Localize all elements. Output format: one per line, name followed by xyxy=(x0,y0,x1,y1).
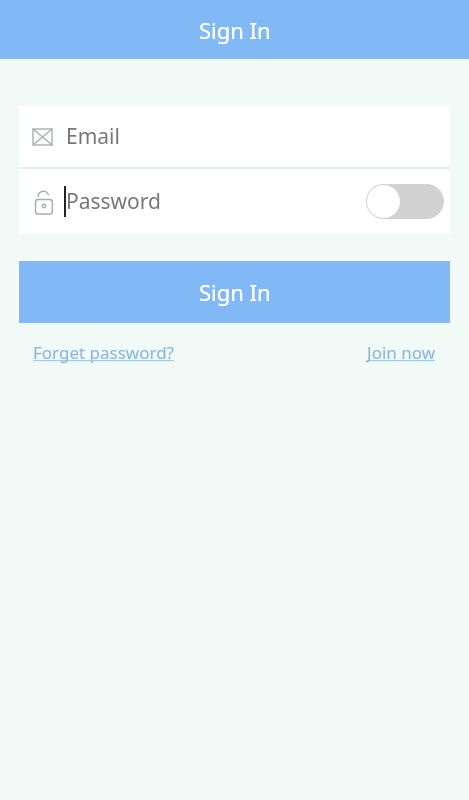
other: Password xyxy=(33,189,54,214)
staticText: Sign In xyxy=(199,15,271,45)
staticText: Email xyxy=(66,122,120,151)
button[interactable]: Email xyxy=(19,106,450,167)
other: Email xyxy=(33,129,52,145)
button[interactable]: Forget password? xyxy=(33,341,174,364)
staticText: Sign In xyxy=(199,277,271,307)
staticText: Join now xyxy=(367,341,436,364)
staticText: Password xyxy=(66,187,161,216)
button[interactable]: Sign In xyxy=(19,261,450,323)
staticText: Forget password? xyxy=(33,341,174,364)
button[interactable]: Show password xyxy=(366,184,444,219)
button[interactable]: Join now xyxy=(367,341,436,364)
button[interactable]: Password xyxy=(19,169,450,234)
